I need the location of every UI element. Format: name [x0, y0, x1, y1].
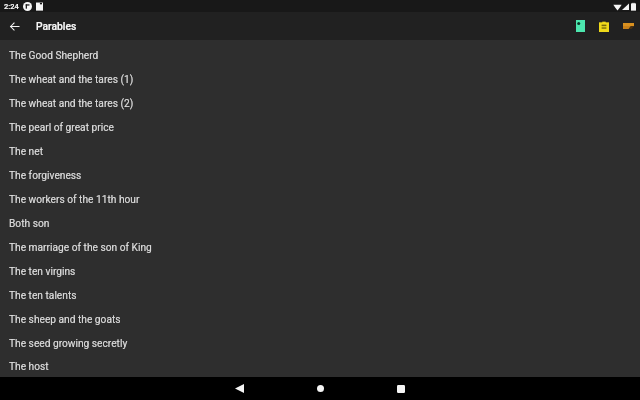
other: Battery — [631, 2, 636, 11]
staticText: The wheat and the tares (1) — [9, 74, 134, 86]
button[interactable]: The forgiveness — [0, 164, 640, 188]
staticText: The ten virgins — [9, 266, 76, 278]
staticText: Both son — [9, 218, 50, 230]
button[interactable]: The sheep and the goats — [0, 308, 640, 332]
staticText: The net — [9, 146, 43, 158]
staticText: 2:24 — [4, 2, 19, 11]
other: Mobile signal — [622, 2, 629, 11]
button[interactable]: The ten virgins — [0, 260, 640, 284]
button[interactable]: Back — [227, 377, 251, 400]
staticText: Parables — [36, 20, 77, 32]
button[interactable]: Notes — [568, 14, 592, 38]
button[interactable]: The ten talents — [0, 284, 640, 308]
button[interactable]: The Good Shepherd — [0, 44, 640, 68]
button[interactable]: Recent apps — [389, 377, 413, 400]
button[interactable]: The workers of the 11th hour — [0, 188, 640, 212]
staticText: The forgiveness — [9, 170, 82, 182]
button[interactable]: The pearl of great price — [0, 116, 640, 140]
button[interactable]: The host — [0, 356, 640, 377]
staticText: The pearl of great price — [9, 122, 114, 134]
button[interactable]: The wheat and the tares (1) — [0, 68, 640, 92]
button[interactable]: The seed growing secretly — [0, 332, 640, 356]
staticText: The host — [9, 361, 49, 373]
staticText: The sheep and the goats — [9, 314, 121, 326]
staticText: The seed growing secretly — [9, 338, 128, 350]
staticText: The ten talents — [9, 290, 77, 302]
staticText: The Good Shepherd — [9, 50, 99, 62]
button[interactable]: The marriage of the son of King — [0, 236, 640, 260]
button[interactable]: Clipboard — [592, 14, 616, 38]
staticText: The marriage of the son of King — [9, 242, 152, 254]
button[interactable]: Navigate up — [2, 14, 26, 38]
button[interactable]: The wheat and the tares (2) — [0, 92, 640, 116]
staticText: The wheat and the tares (2) — [9, 98, 134, 110]
button[interactable]: The net — [0, 140, 640, 164]
button[interactable]: Home — [308, 377, 332, 400]
button[interactable]: Both son — [0, 212, 640, 236]
other: Wi-Fi — [613, 2, 622, 11]
button[interactable]: More options — [616, 14, 640, 38]
staticText: The workers of the 11th hour — [9, 194, 140, 206]
